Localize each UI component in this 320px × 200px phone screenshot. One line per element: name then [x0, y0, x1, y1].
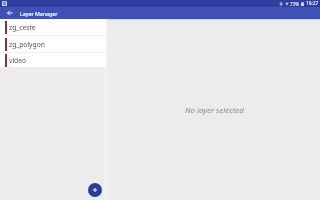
staticText: Layer Manager: [20, 10, 58, 17]
button[interactable]: Add layer: [88, 183, 102, 197]
staticText: zg_polygon: [9, 40, 45, 49]
button[interactable]: zg_polygon: [0, 36, 106, 52]
staticText: zg_ceste: [9, 23, 36, 32]
staticText: 16:27: [306, 0, 319, 7]
button[interactable]: zg_ceste: [0, 19, 106, 35]
staticText: video: [9, 56, 27, 65]
staticText: 73%: [290, 1, 300, 7]
staticText: No layer selected: [185, 105, 244, 116]
button[interactable]: video: [0, 53, 106, 67]
button[interactable]: Back: [5, 8, 15, 18]
